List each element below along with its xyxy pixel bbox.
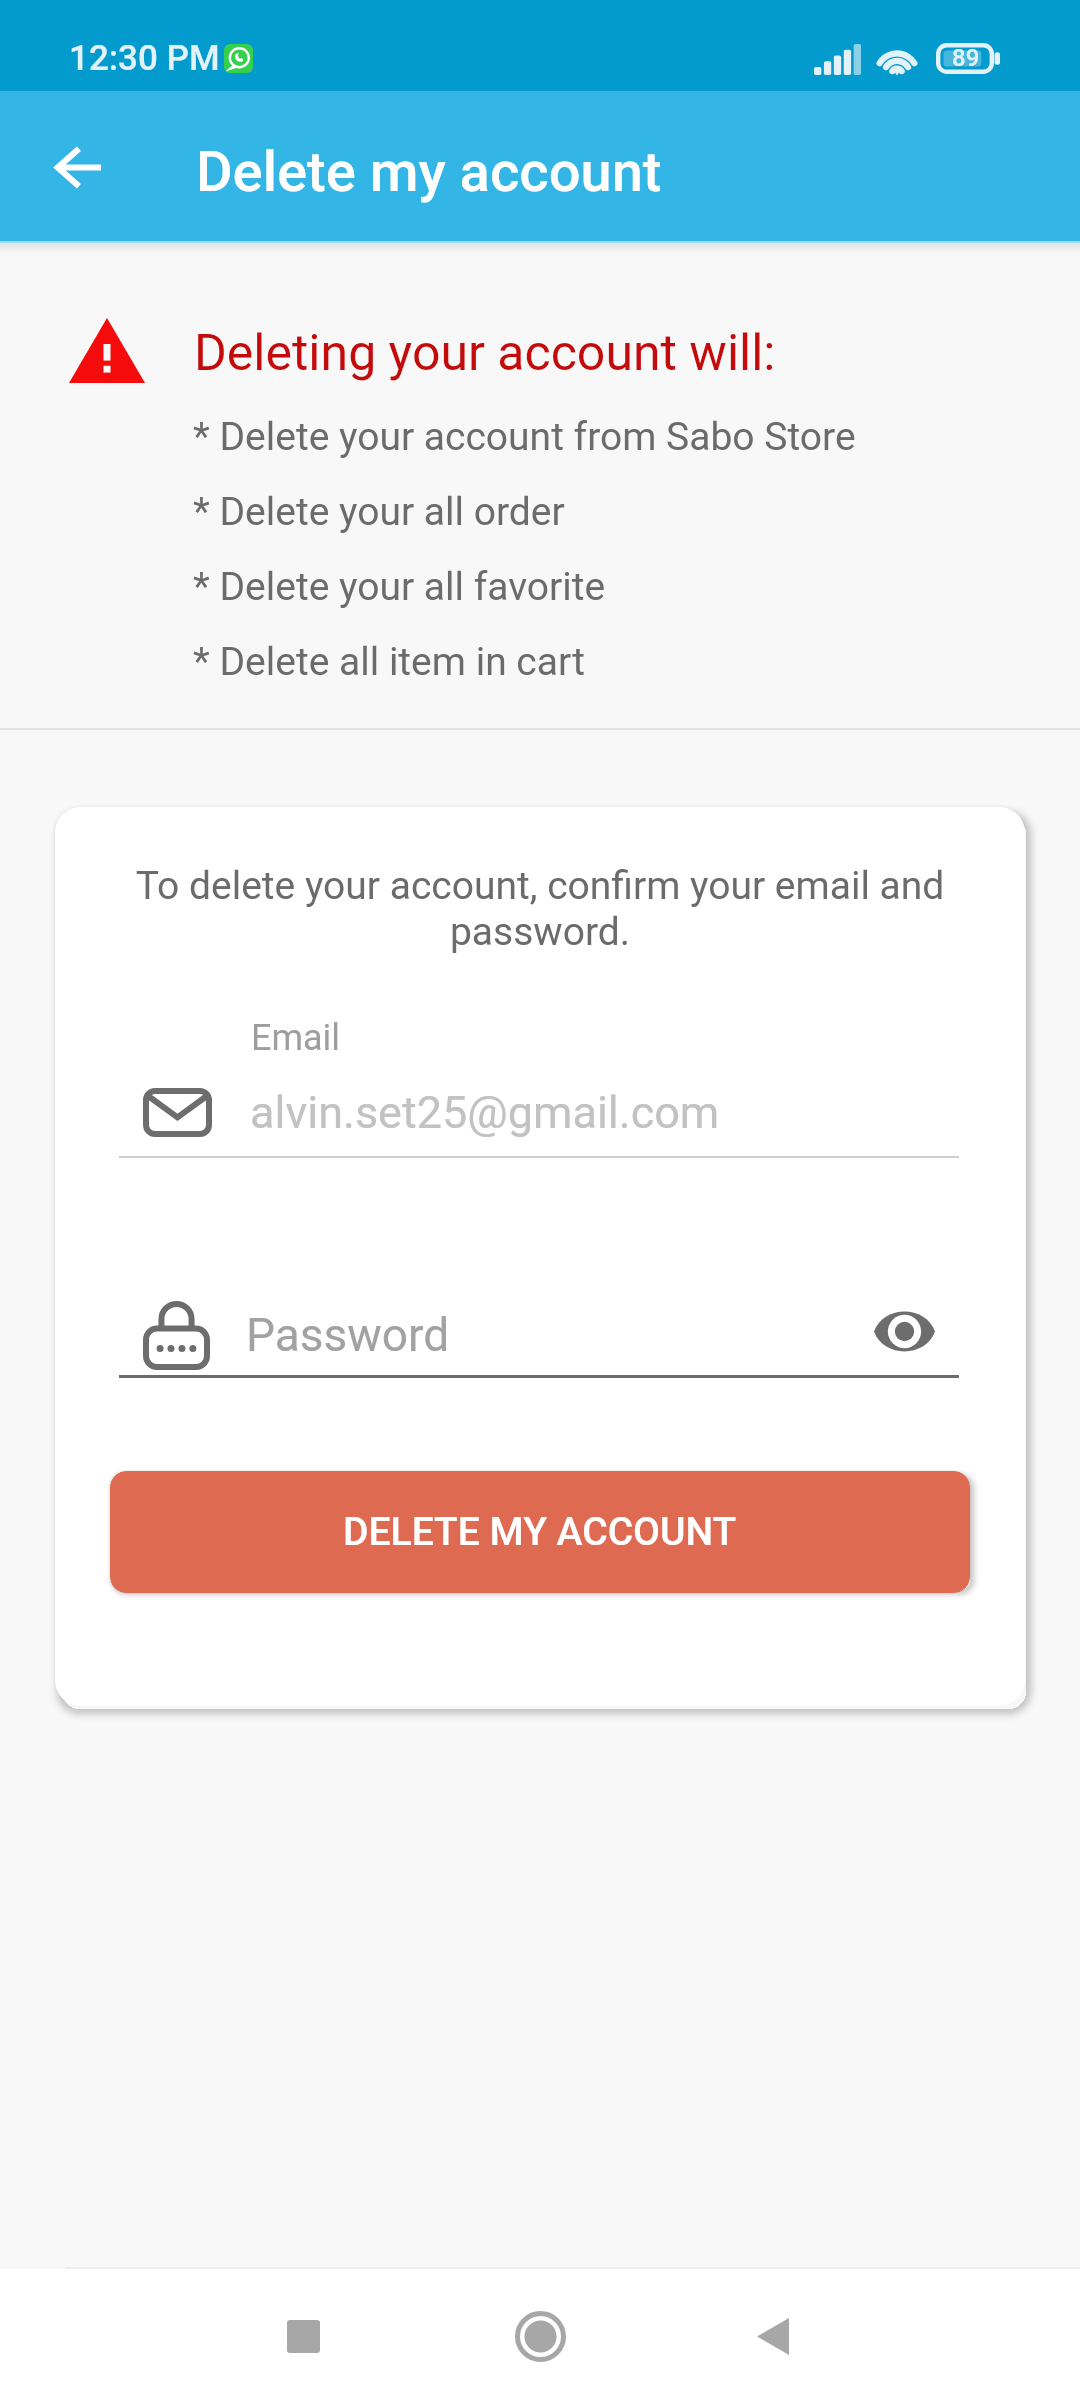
staticText: To delete your account, confirm your ema… xyxy=(131,863,949,955)
staticText: Delete my account xyxy=(196,139,662,205)
staticText: 89 xyxy=(952,44,980,72)
staticText: * Delete your all favorite xyxy=(193,564,606,610)
button[interactable]: Back xyxy=(718,2281,828,2391)
button[interactable]: Show password xyxy=(859,1293,949,1369)
button[interactable]: DELETE MY ACCOUNT xyxy=(110,1471,970,1593)
button[interactable]: Home xyxy=(485,2281,595,2391)
button[interactable]: Back xyxy=(30,119,126,215)
staticText: * Delete your all order xyxy=(193,489,565,535)
button[interactable]: Recents xyxy=(248,2281,358,2391)
staticText: Password xyxy=(246,1308,450,1362)
staticText: 12:30 PM xyxy=(69,38,220,79)
staticText: Email xyxy=(251,1017,341,1059)
staticText: * Delete all item in cart xyxy=(193,639,585,685)
staticText: Deleting your account will: xyxy=(194,324,776,383)
staticText: DELETE MY ACCOUNT xyxy=(343,1509,737,1555)
staticText: * Delete your account from Sabo Store xyxy=(193,414,856,460)
staticText: alvin.set25@gmail.com xyxy=(250,1086,720,1139)
